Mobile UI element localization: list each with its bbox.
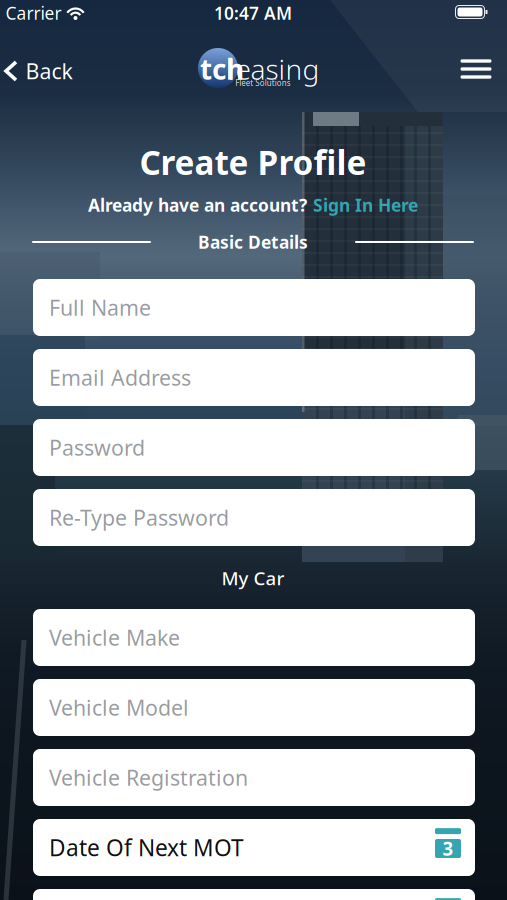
button[interactable]: Password [33,419,475,476]
staticText: tch [200,50,244,88]
button[interactable]: Vehicle Registration [33,749,475,806]
button[interactable]: Back [3,57,72,85]
staticText: Re-Type Password [49,503,229,532]
staticText: Full Name [49,293,151,322]
button[interactable]: Re-Type Password [33,489,475,546]
staticText: Vehicle Model [49,693,189,722]
button[interactable]: Vehicle Make [33,609,475,666]
staticText: Carrier [5,1,61,24]
staticText: Already have an account? [88,193,307,216]
staticText: Basic Details [198,230,308,253]
button[interactable]: Menu [460,59,491,79]
button[interactable]: Sign In Here [313,193,418,216]
staticText: Password [49,433,145,462]
staticText: leasing [228,50,319,88]
staticText: Date Of Next MOT [49,832,244,862]
button[interactable]: Date Of Next Service [33,889,475,900]
staticText: Email Address [49,363,191,392]
staticText: Sign In Here [313,193,418,216]
button[interactable]: Email Address [33,349,475,406]
button[interactable]: Vehicle Model [33,679,475,736]
staticText: My Car [221,566,284,590]
staticText: 10:47 AM [214,1,292,24]
button[interactable]: Full Name [33,279,475,336]
staticText: Create Profile [139,140,366,184]
staticText: Vehicle Make [49,623,180,652]
staticText: 3 [442,836,453,861]
staticText: Back [25,57,72,85]
staticText: Fleet Solutions [207,72,318,94]
staticText: Vehicle Registration [49,763,248,792]
button[interactable]: Date Of Next MOT [33,819,475,876]
